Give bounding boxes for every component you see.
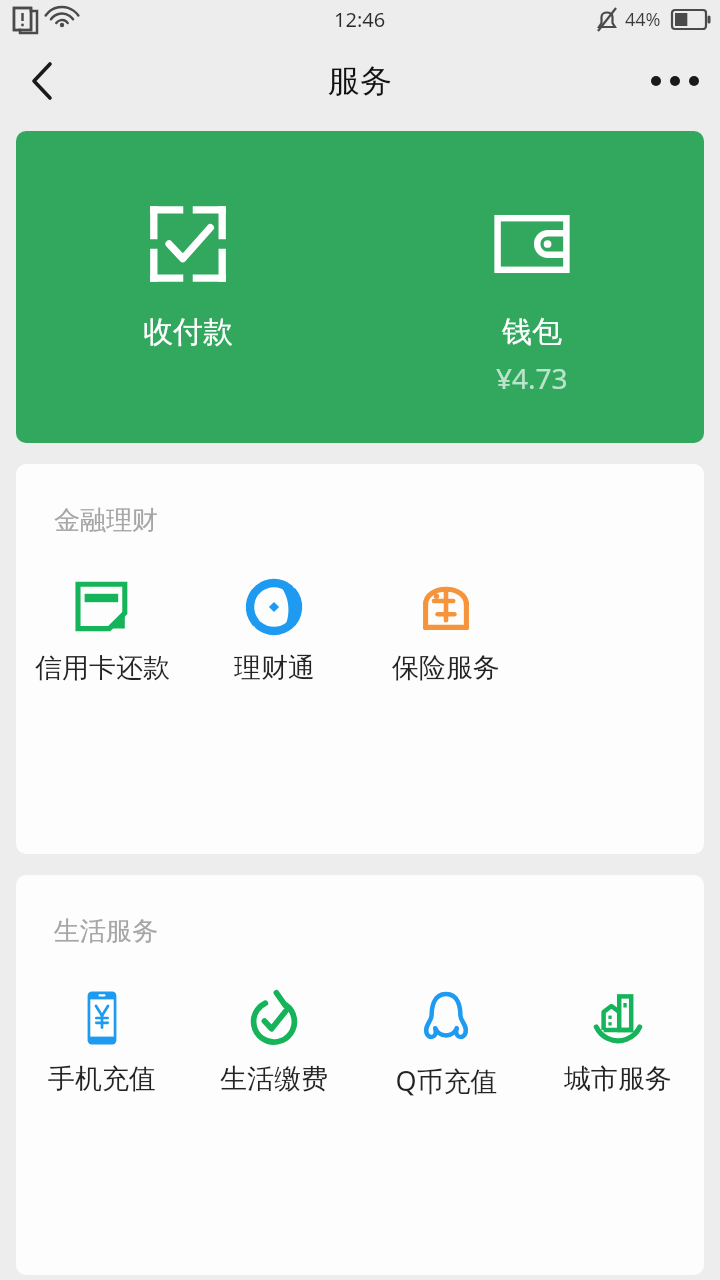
staticText: 12:46	[334, 6, 386, 33]
staticText: 信用卡还款	[35, 651, 170, 685]
staticText: 保险服务	[392, 651, 500, 685]
button[interactable]: 理财通	[188, 577, 360, 727]
staticText: Q币充值	[395, 1062, 498, 1099]
staticText: 生活缴费	[220, 1062, 328, 1096]
staticText: 44%	[625, 7, 661, 32]
staticText: 理财通	[234, 651, 315, 685]
button[interactable]: 保险服务	[360, 577, 532, 727]
button[interactable]: Back	[0, 42, 80, 120]
staticText: 钱包	[502, 313, 562, 351]
staticText: 城市服务	[564, 1062, 672, 1096]
staticText: 服务	[328, 61, 392, 101]
button[interactable]: More options	[636, 42, 720, 120]
button[interactable]: Q币充值	[360, 988, 532, 1138]
button[interactable]: 信用卡还款	[16, 577, 188, 727]
button[interactable]: 生活缴费	[188, 988, 360, 1138]
staticText: 收付款	[143, 313, 233, 351]
button[interactable]: 手机充值	[16, 988, 188, 1138]
button[interactable]: 钱包	[360, 131, 704, 443]
button[interactable]: 城市服务	[532, 988, 704, 1138]
button[interactable]: 收付款	[16, 131, 360, 443]
staticText: 生活服务	[54, 915, 158, 948]
staticText: 手机充值	[48, 1062, 156, 1096]
staticText: 金融理财	[54, 504, 158, 537]
staticText: ¥4.73	[496, 359, 568, 397]
